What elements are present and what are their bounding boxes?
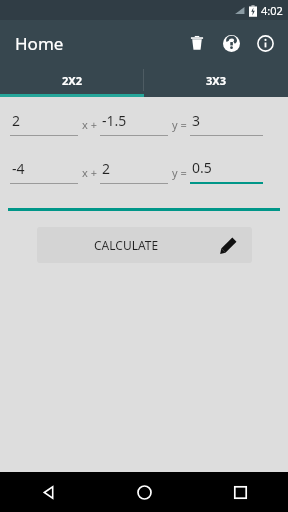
staticText: 2 xyxy=(102,159,111,178)
button[interactable]: -4 xyxy=(10,159,78,184)
button[interactable]: Back xyxy=(0,472,96,512)
button[interactable]: 3X3 xyxy=(144,66,288,94)
button[interactable]: 2X2 xyxy=(0,66,143,94)
staticText: Home xyxy=(15,32,64,55)
button[interactable]: Help xyxy=(214,26,248,60)
staticText: 2X2 xyxy=(62,73,82,88)
staticText: x + xyxy=(82,117,97,132)
staticText: x + xyxy=(82,165,97,180)
button[interactable]: 3 xyxy=(190,111,263,136)
staticText: 3 xyxy=(192,111,201,130)
button[interactable]: 0.5 xyxy=(190,158,263,184)
staticText: CALCULATE xyxy=(94,237,159,253)
button[interactable]: 2 xyxy=(10,111,78,136)
button[interactable]: Home xyxy=(96,472,192,512)
button[interactable]: CALCULATE xyxy=(37,227,252,263)
staticText: -1.5 xyxy=(102,111,127,130)
staticText: 3X3 xyxy=(206,73,226,88)
staticText: y = xyxy=(172,117,187,132)
staticText: -4 xyxy=(12,159,25,178)
button[interactable]: -1.5 xyxy=(100,111,168,136)
staticText: 4:02 xyxy=(261,3,283,18)
staticText: y = xyxy=(172,165,187,180)
button[interactable]: Recent apps xyxy=(192,472,288,512)
button[interactable]: 2 xyxy=(100,159,168,184)
button[interactable]: Delete xyxy=(180,26,214,60)
staticText: 0.5 xyxy=(192,158,212,177)
button[interactable]: Info xyxy=(248,26,282,60)
staticText: 2 xyxy=(12,111,21,130)
